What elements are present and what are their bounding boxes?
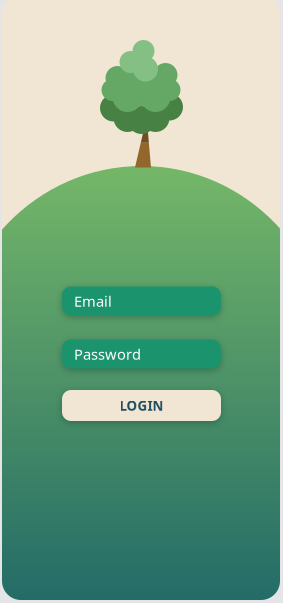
staticText: Password bbox=[74, 344, 141, 364]
staticText: Email bbox=[74, 291, 112, 311]
button[interactable]: LOGIN bbox=[62, 390, 221, 421]
button[interactable]: Password bbox=[62, 339, 221, 368]
button[interactable]: Email bbox=[62, 286, 221, 315]
staticText: LOGIN bbox=[119, 397, 163, 414]
